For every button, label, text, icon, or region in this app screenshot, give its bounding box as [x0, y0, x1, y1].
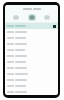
button[interactable]: Card view: [43, 14, 51, 21]
button[interactable]: [5, 47, 58, 53]
button[interactable]: [5, 89, 58, 95]
button[interactable]: [5, 35, 58, 41]
button[interactable]: [5, 41, 58, 47]
button[interactable]: [5, 77, 58, 83]
button[interactable]: Row action: [5, 23, 58, 29]
button[interactable]: Grid view: [12, 14, 20, 21]
button[interactable]: [5, 71, 58, 77]
button[interactable]: [5, 59, 58, 65]
button[interactable]: [5, 65, 58, 71]
button[interactable]: [5, 83, 58, 89]
button[interactable]: [5, 29, 58, 35]
button[interactable]: [5, 53, 58, 59]
button[interactable]: List view: [28, 14, 36, 21]
